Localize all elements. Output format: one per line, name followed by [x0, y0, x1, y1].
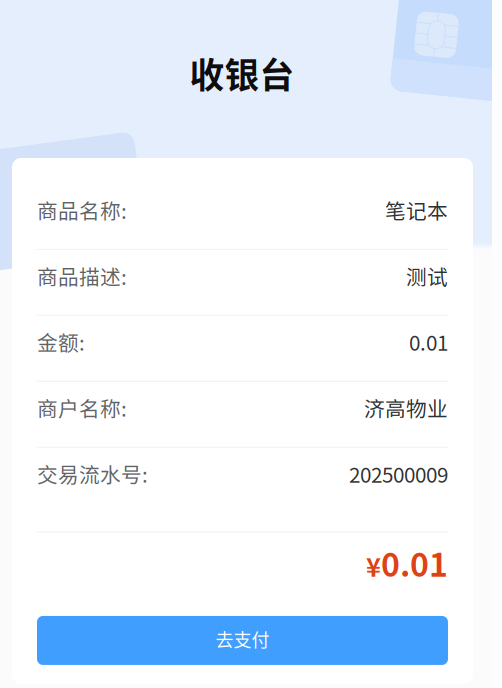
button[interactable]: 去支付 — [37, 616, 448, 665]
staticText: 济高物业 — [364, 393, 448, 423]
staticText: 金额: — [37, 327, 85, 357]
staticText: 去支付 — [215, 626, 269, 652]
staticText: 交易流水号: — [37, 459, 148, 489]
staticText: ¥ — [366, 547, 381, 584]
staticText: 商品描述: — [37, 261, 127, 291]
staticText: 收银台 — [189, 48, 294, 98]
staticText: 测试 — [406, 261, 448, 291]
staticText: 0.01 — [409, 327, 448, 357]
staticText: 商品名称: — [37, 195, 127, 225]
staticText: 0.01 — [381, 540, 448, 586]
staticText: 笔记本 — [385, 195, 448, 225]
staticText: 202500009 — [349, 459, 448, 489]
staticText: 商户名称: — [37, 393, 127, 423]
